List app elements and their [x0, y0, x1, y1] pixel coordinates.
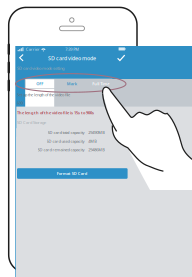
staticText: Set up the length of the video file: [17, 92, 70, 97]
button[interactable]: Confirm: [0, 0, 192, 277]
staticText: Mark: [67, 81, 77, 86]
staticText: SD card used capacity: [47, 138, 85, 144]
staticText: 29490MB: [88, 130, 105, 135]
staticText: SD Card Storage: [17, 120, 46, 125]
staticText: Format SD Card: [57, 171, 88, 176]
staticText: 29486MB: [88, 147, 105, 152]
button[interactable]: OFF: [0, 0, 192, 277]
button[interactable]: Back: [0, 0, 192, 277]
staticText: SD card video mode: [48, 55, 96, 62]
button[interactable]: Full Time: [0, 0, 192, 277]
staticText: SD card total capacity: [48, 130, 85, 135]
staticText: The length of the video file is 15s to 9…: [17, 110, 94, 115]
staticText: Carrier: [26, 46, 40, 52]
staticText: SD card video mode setting: [17, 65, 64, 71]
staticText: Full Time: [92, 81, 109, 86]
staticText: 600: [17, 100, 23, 105]
staticText: 4MB: [88, 138, 97, 144]
button[interactable]: Mark: [0, 0, 192, 277]
button[interactable]: Format SD Card: [0, 0, 192, 277]
staticText: 7:39 PM: [65, 46, 79, 52]
staticText: SD card remained capacity: [38, 147, 85, 152]
staticText: OFF: [36, 81, 43, 86]
